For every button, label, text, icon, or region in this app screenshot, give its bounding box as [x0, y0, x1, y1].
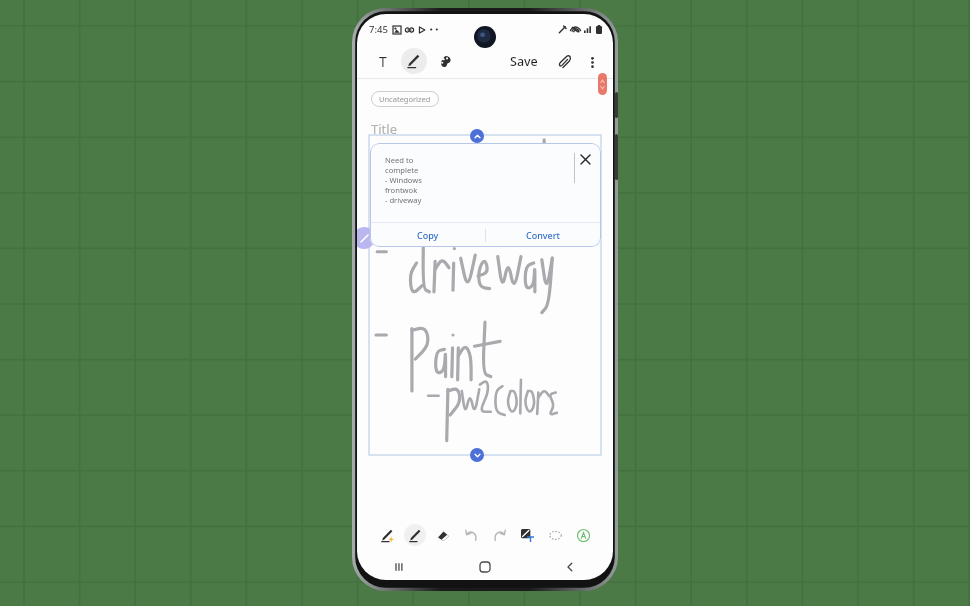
button[interactable]: Recent apps: [387, 554, 413, 580]
button[interactable]: Lasso select: [544, 524, 566, 546]
button[interactable]: Attach: [553, 51, 575, 73]
button[interactable]: Drawing mode: [432, 48, 458, 74]
staticText: Uncategorized: [379, 94, 431, 104]
staticText: Copy: [417, 229, 439, 241]
button[interactable]: Redo: [488, 524, 510, 546]
button[interactable]: Eraser: [432, 524, 454, 546]
button[interactable]: Close: [577, 151, 593, 167]
button[interactable]: Pen settings: [357, 227, 375, 249]
button[interactable]: Text mode: [370, 48, 396, 74]
button[interactable]: Back: [557, 554, 583, 580]
button[interactable]: Save: [506, 49, 542, 74]
staticText: frontwok: [385, 185, 418, 195]
button[interactable]: Home: [472, 554, 498, 580]
staticText: Convert: [526, 229, 561, 241]
staticText: 7:45: [369, 23, 388, 36]
staticText: - Windows: [385, 175, 422, 185]
button[interactable]: Pen with effect: [376, 524, 398, 546]
staticText: Title: [371, 120, 397, 138]
button[interactable]: Uncategorized: [371, 91, 439, 107]
button[interactable]: More options: [581, 51, 603, 73]
button[interactable]: Copy: [370, 223, 485, 247]
staticText: Save: [510, 53, 538, 70]
button[interactable]: Smart select: [572, 524, 594, 546]
button[interactable]: Convert to text: [516, 524, 538, 546]
button[interactable]: Expand selection up: [470, 129, 484, 143]
button[interactable]: Expand selection down: [470, 448, 484, 462]
staticText: complete: [385, 165, 419, 175]
button[interactable]: Scroll: [598, 73, 607, 95]
staticText: - driveway: [385, 195, 422, 205]
button[interactable]: Pen: [404, 524, 426, 546]
staticText: T: [379, 52, 387, 71]
button[interactable]: Undo: [460, 524, 482, 546]
button[interactable]: Handwriting mode: [401, 48, 427, 74]
staticText: Need to: [385, 155, 414, 165]
button[interactable]: Convert: [486, 223, 601, 247]
